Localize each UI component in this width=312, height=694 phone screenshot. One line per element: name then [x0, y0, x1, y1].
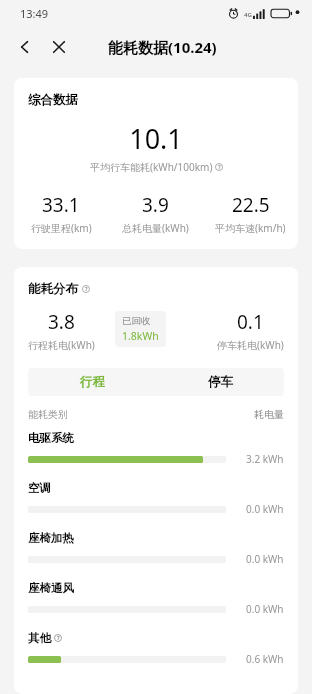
staticText: 0.0 kWh — [246, 602, 284, 616]
staticText: 能耗分布 — [28, 281, 78, 297]
staticText: 座椅通风 — [28, 581, 74, 595]
staticText: 能耗类别 — [28, 408, 68, 421]
button[interactable]: Close — [44, 32, 74, 62]
button[interactable]: Back — [10, 32, 40, 62]
staticText: 耗电量 — [254, 408, 284, 421]
staticText: 0.0 kWh — [246, 552, 284, 566]
staticText: 3.2 kWh — [246, 452, 284, 466]
button[interactable]: 行程 — [28, 368, 156, 396]
button[interactable]: 空调 — [14, 481, 298, 531]
staticText: 3.9 — [142, 192, 169, 218]
staticText: 其他 — [28, 631, 51, 645]
staticText: 座椅加热 — [28, 531, 74, 545]
staticText: 平均行车能耗(kWh/100km) — [90, 160, 213, 174]
staticText: 综合数据 — [28, 92, 78, 108]
staticText: 行驶里程(km) — [31, 221, 92, 235]
staticText: 3.8 — [48, 309, 75, 335]
button[interactable]: 停车 — [156, 368, 284, 396]
button[interactable]: 其他 — [14, 631, 298, 678]
staticText: 0.0 kWh — [246, 502, 284, 516]
staticText: 0.1 — [237, 309, 264, 335]
staticText: 空调 — [28, 481, 51, 495]
staticText: 停车 — [208, 374, 233, 390]
staticText: 行程 — [80, 374, 105, 390]
staticText: 停车耗电(kWh) — [217, 338, 284, 352]
staticText: 1.8kWh — [122, 329, 159, 343]
staticText: 22.5 — [232, 192, 270, 218]
button[interactable]: 电驱系统 — [14, 431, 298, 481]
staticText: 行程耗电(kWh) — [28, 338, 95, 352]
button[interactable]: 座椅加热 — [14, 531, 298, 581]
staticText: 平均车速(km/h) — [215, 221, 286, 235]
staticText: 13:49 — [20, 6, 49, 21]
button[interactable]: 座椅通风 — [14, 581, 298, 631]
staticText: 已回收 — [122, 315, 151, 327]
staticText: 4G — [244, 11, 252, 19]
staticText: 0.6 kWh — [246, 652, 284, 666]
staticText: 能耗数据(10.24) — [108, 37, 217, 57]
staticText: 电驱系统 — [28, 431, 74, 445]
staticText: 10.1 — [14, 120, 298, 157]
staticText: 总耗电量(kWh) — [122, 221, 189, 235]
staticText: 33.1 — [42, 192, 80, 218]
